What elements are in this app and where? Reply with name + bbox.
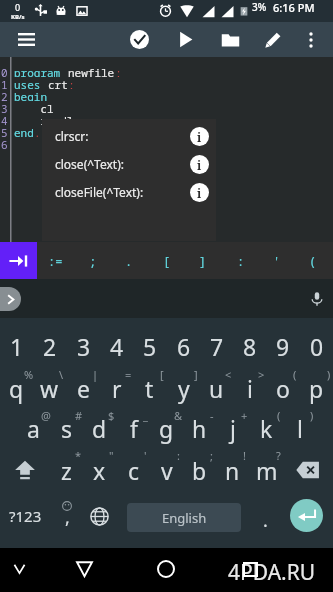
button[interactable]: ? — [250, 449, 283, 491]
button[interactable]: ; — [183, 449, 216, 491]
button[interactable]: Back — [63, 548, 105, 590]
button[interactable]: 2 — [33, 325, 66, 367]
staticText: q — [9, 373, 24, 404]
staticText: 3 — [77, 331, 91, 362]
button[interactable]: ( — [296, 242, 330, 279]
button[interactable]: " — [83, 449, 116, 491]
staticText: ? — [276, 448, 281, 463]
button[interactable]: ! — [216, 449, 249, 491]
staticText: ! — [243, 448, 246, 463]
staticText: readln — [14, 113, 80, 125]
staticText: t — [145, 373, 154, 404]
staticText: ) — [327, 367, 331, 382]
button[interactable]: Home — [145, 548, 187, 590]
button[interactable]: Files — [211, 22, 249, 57]
staticText: 7 — [210, 331, 224, 362]
staticText: 1 — [10, 331, 24, 362]
button[interactable]: 8 — [233, 325, 266, 367]
button[interactable]: 9 — [266, 325, 299, 367]
button[interactable]: Enter — [290, 499, 323, 532]
staticText: = — [125, 367, 132, 382]
button[interactable]: := — [38, 242, 72, 279]
button[interactable]: closeFile(^Text): — [42, 178, 216, 206]
staticText: $ — [108, 408, 115, 423]
button[interactable]: close(^Text): — [42, 150, 216, 178]
staticText: ' — [144, 448, 147, 463]
button[interactable]: Recents — [229, 548, 271, 590]
button[interactable]: Hide keyboard — [0, 548, 40, 590]
button[interactable]: 6 — [167, 325, 200, 367]
button[interactable]: Tab — [0, 242, 37, 279]
button[interactable]: : — [224, 242, 258, 279]
button[interactable]: More options — [292, 22, 330, 57]
button[interactable]: . — [248, 494, 282, 538]
staticText: : — [177, 448, 180, 463]
button[interactable]: Change language — [82, 494, 117, 538]
button[interactable]: ?123 — [0, 494, 50, 538]
button[interactable]: = — [100, 367, 133, 409]
button[interactable]: [ — [133, 367, 166, 409]
button[interactable]: Voice input — [300, 279, 333, 318]
button[interactable]: % — [0, 367, 33, 409]
button[interactable]: ; — [76, 242, 110, 279]
staticText: f — [130, 413, 138, 444]
button[interactable]: Info — [190, 155, 209, 174]
button[interactable]: English — [127, 503, 241, 532]
button[interactable]: Backspace — [283, 449, 333, 491]
staticText: s — [61, 413, 73, 444]
button[interactable]: Edit — [254, 22, 292, 57]
staticText: - — [210, 408, 214, 423]
button[interactable]: Info — [190, 127, 209, 146]
button[interactable]: 0 — [300, 325, 333, 367]
button[interactable]: Menu — [7, 22, 45, 57]
button[interactable]: ) — [300, 367, 333, 409]
button[interactable]: 4 — [100, 325, 133, 367]
staticText: j — [230, 413, 236, 444]
button[interactable]: * — [50, 449, 83, 491]
staticText: . — [263, 508, 268, 533]
button[interactable]: Comma and emoji — [50, 494, 84, 538]
staticText: w — [40, 373, 59, 404]
button[interactable]: ) — [283, 407, 316, 449]
button[interactable]: ' — [117, 449, 150, 491]
button[interactable]: Shift — [0, 449, 50, 491]
staticText: i — [197, 129, 202, 145]
button[interactable]: ] — [167, 367, 200, 409]
button[interactable]: Save — [120, 22, 158, 57]
button[interactable]: 1 — [0, 325, 33, 367]
button[interactable]: & — [150, 407, 183, 449]
button[interactable]: - — [183, 407, 216, 449]
button[interactable]: ( — [266, 367, 299, 409]
button[interactable]: [ — [150, 242, 184, 279]
button[interactable]: @ — [17, 407, 50, 449]
button[interactable]: _ — [117, 407, 150, 449]
button[interactable]: 3 — [67, 325, 100, 367]
button[interactable]: + — [216, 407, 249, 449]
button[interactable]: \ — [33, 367, 66, 409]
staticText: 0 — [1, 65, 8, 77]
button[interactable]: Run — [166, 22, 204, 57]
button[interactable]: clrscr: — [42, 122, 216, 150]
staticText: a — [27, 413, 40, 444]
button[interactable]: < — [200, 367, 233, 409]
button[interactable]: : — [150, 449, 183, 491]
staticText: d — [92, 413, 107, 444]
staticText: 3 — [1, 101, 8, 113]
button[interactable]: ( — [250, 407, 283, 449]
button[interactable]: . — [112, 242, 146, 279]
button[interactable]: ] — [186, 242, 220, 279]
button[interactable]: | — [67, 367, 100, 409]
button[interactable]: ' — [260, 242, 294, 279]
button[interactable]: > — [233, 367, 266, 409]
button[interactable]: $ — [83, 407, 116, 449]
staticText: end — [14, 125, 34, 137]
staticText: 2 — [1, 89, 8, 101]
button[interactable]: 7 — [200, 325, 233, 367]
staticText: i — [247, 373, 253, 404]
button[interactable]: Expand suggestions — [0, 287, 21, 311]
button[interactable]: Info — [190, 183, 209, 202]
button[interactable]: 5 — [133, 325, 166, 367]
staticText: ; — [210, 448, 213, 463]
button[interactable]: # — [50, 407, 83, 449]
